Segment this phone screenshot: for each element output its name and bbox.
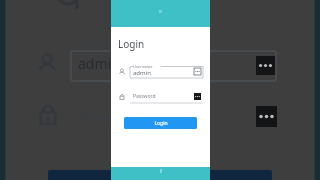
- staticText: Login: [154, 120, 168, 127]
- staticText: Passw: [78, 108, 116, 126]
- button[interactable]: Username: [118, 65, 203, 78]
- staticText: Login: [118, 37, 145, 51]
- button[interactable]: Show password: [194, 93, 201, 100]
- staticText: admin: [78, 54, 120, 73]
- staticText: admin: [133, 69, 151, 77]
- button[interactable]: Show options: [194, 68, 201, 75]
- staticText: Password: [133, 93, 156, 100]
- button[interactable]: Password: [118, 90, 203, 103]
- staticText: Usern: [78, 36, 109, 51]
- staticText: Username: [133, 64, 153, 69]
- button[interactable]: Login: [124, 117, 197, 129]
